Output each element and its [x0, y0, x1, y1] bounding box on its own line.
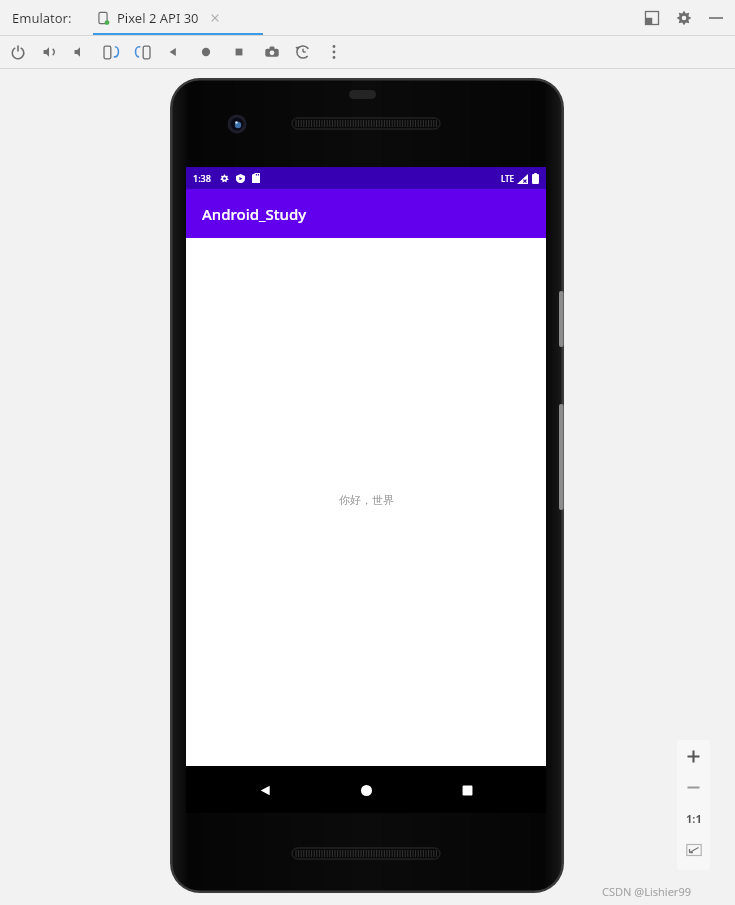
button[interactable]: Settings [675, 9, 693, 27]
staticText: Pixel 2 API 30 [117, 9, 199, 27]
button[interactable]: Power [9, 43, 27, 61]
button[interactable]: More [325, 43, 343, 61]
button[interactable]: Back [243, 768, 287, 812]
staticText: 1:38 [193, 172, 211, 184]
staticText: 你好，世界 [339, 493, 394, 507]
button[interactable]: Rotate left [102, 43, 120, 61]
staticText: 1:1 [686, 811, 702, 826]
button[interactable]: Home [344, 768, 388, 812]
staticText: LTE [501, 173, 515, 184]
button[interactable]: Volume up [40, 43, 58, 61]
button[interactable]: Separate window [643, 9, 661, 27]
button[interactable]: Pixel 2 API 30 [97, 9, 222, 27]
staticText: Android_Study [202, 204, 307, 224]
button[interactable]: Zoom to fit [677, 834, 710, 866]
button[interactable]: Minimize [707, 9, 725, 27]
button[interactable]: Zoom out [677, 772, 710, 802]
button[interactable]: Recent apps [445, 768, 489, 812]
button[interactable]: Rotate right [133, 43, 151, 61]
button[interactable]: Screenshot [263, 43, 281, 61]
button[interactable]: Overview [230, 43, 248, 61]
button[interactable]: Volume down [71, 43, 89, 61]
button[interactable]: Close tab [208, 11, 222, 25]
staticText: CSDN @Lishier99 [602, 884, 691, 899]
button[interactable]: Home [197, 43, 215, 61]
staticText: Emulator: [12, 9, 72, 27]
button[interactable]: Zoom in [677, 740, 710, 772]
button[interactable]: Back [164, 43, 182, 61]
button[interactable]: Zoom to actual size [677, 802, 710, 834]
button[interactable]: History [294, 43, 312, 61]
